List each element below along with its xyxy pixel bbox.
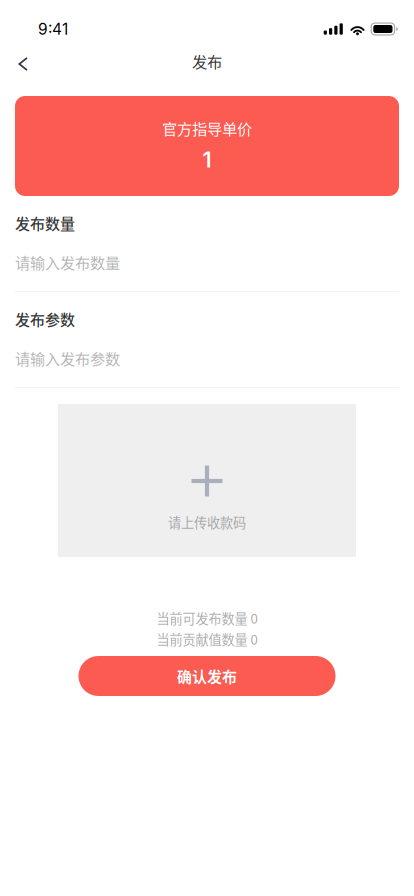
button[interactable]: 请输入发布数量 bbox=[15, 251, 399, 273]
staticText: 发布 bbox=[192, 50, 222, 72]
staticText: 发布参数 bbox=[15, 308, 75, 330]
staticText: 9:41 bbox=[38, 20, 68, 38]
staticText: 请上传收款码 bbox=[168, 512, 246, 531]
staticText: 当前贡献值数量 0 bbox=[156, 629, 257, 648]
button[interactable]: 确认发布 bbox=[78, 656, 335, 696]
button[interactable]: 请上传收款码 bbox=[58, 404, 356, 557]
staticText: 确认发布 bbox=[177, 665, 237, 687]
staticText: 请输入发布参数 bbox=[15, 347, 120, 369]
staticText: 官方指导单价 bbox=[162, 117, 252, 139]
button[interactable]: 请输入发布参数 bbox=[15, 347, 399, 369]
staticText: 1 bbox=[202, 146, 211, 173]
staticText: 当前可发布数量 0 bbox=[156, 608, 257, 627]
staticText: 请输入发布数量 bbox=[15, 251, 120, 273]
button[interactable]: Back bbox=[0, 39, 46, 83]
staticText: 发布数量 bbox=[15, 212, 75, 234]
